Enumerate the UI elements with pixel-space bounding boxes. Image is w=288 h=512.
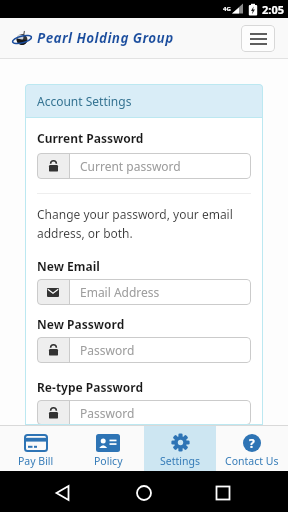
staticText: Password [80, 342, 135, 358]
button[interactable]: Pay Bill [0, 426, 72, 471]
button[interactable]: Policy [72, 426, 144, 471]
button[interactable]: ? [216, 426, 288, 471]
staticText: ? [249, 435, 255, 451]
button[interactable]: Settings [144, 426, 216, 471]
staticText: 4G [223, 5, 231, 13]
button[interactable] [241, 25, 275, 52]
button[interactable] [0, 471, 96, 512]
staticText: Current password [80, 158, 181, 174]
staticText: Pearl Holding Group [37, 29, 174, 47]
staticText: Password [80, 405, 135, 421]
staticText: Policy [94, 454, 123, 468]
button[interactable]: Current password [37, 153, 251, 179]
staticText: Email Address [80, 284, 160, 300]
staticText: New Password [37, 316, 125, 332]
button[interactable]: Password [37, 400, 251, 425]
staticText: Pay Bill [18, 454, 54, 468]
staticText: Change your password, your email address… [37, 206, 233, 241]
button[interactable]: Email Address [37, 279, 251, 305]
button[interactable] [96, 471, 192, 512]
staticText: Account Settings [37, 93, 132, 109]
button[interactable] [192, 471, 288, 512]
staticText: Contact Us [225, 454, 279, 468]
button[interactable]: Password [37, 337, 251, 363]
staticText: Re-type Password [37, 379, 143, 395]
staticText: Settings [160, 454, 200, 468]
staticText: 2:05 [262, 2, 284, 17]
staticText: New Email [37, 258, 100, 274]
staticText: Current Password [37, 130, 144, 146]
